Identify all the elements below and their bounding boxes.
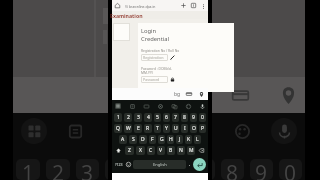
button[interactable]: ?123 <box>113 160 125 169</box>
staticText: F <box>151 136 154 143</box>
staticText: bg <box>174 91 181 98</box>
staticText: 1 <box>117 114 120 121</box>
staticText: A <box>121 136 125 143</box>
button[interactable]: P <box>199 124 206 133</box>
staticText: I <box>184 125 186 132</box>
button[interactable]: S <box>129 135 137 144</box>
button[interactable]: . <box>187 160 193 169</box>
button[interactable]: More options <box>199 2 207 10</box>
staticText: V <box>159 147 163 154</box>
button[interactable]: 7 <box>172 113 179 122</box>
staticText: 7 <box>197 159 210 180</box>
staticText: X <box>139 147 142 154</box>
button[interactable]: Apps <box>114 102 122 110</box>
button[interactable]: L <box>194 135 201 144</box>
button[interactable]: C <box>147 146 155 155</box>
button[interactable]: B <box>167 146 175 155</box>
button[interactable]: T <box>154 124 161 133</box>
staticText: M <box>189 147 194 154</box>
staticText: J <box>179 136 181 143</box>
button[interactable]: H <box>167 135 174 144</box>
staticText: 0 <box>284 159 297 180</box>
staticText: N <box>179 147 183 154</box>
staticText: Z <box>128 147 131 154</box>
staticText: T <box>156 125 159 132</box>
button[interactable]: F <box>149 135 156 144</box>
staticText: U <box>174 125 178 132</box>
staticText: Login <box>141 27 157 35</box>
staticText: MM-YY) <box>141 70 153 74</box>
button[interactable]: A <box>119 135 127 144</box>
button[interactable]: bseonline.dpa.in <box>122 2 179 10</box>
button[interactable]: Location <box>197 90 205 98</box>
button[interactable]: 1 <box>114 113 122 122</box>
button[interactable]: 2 <box>124 113 132 122</box>
staticText: 8 <box>226 159 239 180</box>
button[interactable]: Enter <box>193 158 206 171</box>
button[interactable]: R <box>144 124 152 133</box>
staticText: R <box>146 125 150 132</box>
button[interactable]: Registration <box>141 54 168 61</box>
button[interactable]: Payments <box>185 90 193 98</box>
staticText: C <box>149 147 153 154</box>
staticText: Registration <box>143 55 164 60</box>
button[interactable]: 3 <box>134 113 142 122</box>
staticText: P <box>201 125 205 132</box>
button[interactable]: Password <box>141 76 168 83</box>
button[interactable]: Z <box>125 146 134 155</box>
staticText: Password <box>143 77 160 82</box>
button[interactable]: Settings <box>156 102 164 110</box>
button[interactable]: G <box>158 135 165 144</box>
button[interactable]: GIF <box>142 102 150 110</box>
button[interactable]: Voice input <box>198 102 206 110</box>
button[interactable]: Clipboard <box>128 102 136 110</box>
staticText: 0 <box>201 114 204 121</box>
staticText: 5 <box>156 114 159 121</box>
button[interactable]: Home <box>113 1 122 10</box>
staticText: 7 <box>174 114 177 121</box>
button[interactable]: M <box>187 146 195 155</box>
staticText: 9 <box>192 114 195 121</box>
button[interactable]: Themes <box>184 102 192 110</box>
button[interactable]: 0 <box>199 113 206 122</box>
staticText: English <box>153 162 167 167</box>
button[interactable]: X <box>136 146 145 155</box>
button[interactable]: 8 <box>181 113 188 122</box>
button[interactable]: V <box>157 146 165 155</box>
staticText: 3 <box>81 159 94 180</box>
button[interactable]: Q <box>114 124 122 133</box>
button[interactable]: Tabs <box>189 1 198 10</box>
staticText: 4 <box>147 114 150 121</box>
button[interactable]: Backspace <box>196 146 207 155</box>
button[interactable]: 6 <box>163 113 170 122</box>
button[interactable]: 9 <box>190 113 197 122</box>
staticText: 5 <box>139 159 152 180</box>
button[interactable]: I <box>181 124 188 133</box>
button[interactable]: N <box>177 146 185 155</box>
button[interactable]: Emoji <box>125 160 132 169</box>
button[interactable]: New tab <box>179 1 188 10</box>
staticText: L <box>196 136 199 143</box>
button[interactable]: Shift <box>113 146 124 155</box>
staticText: O <box>192 125 196 132</box>
button[interactable]: W <box>124 124 132 133</box>
staticText: 2 <box>127 114 130 121</box>
button[interactable]: Y <box>163 124 170 133</box>
button[interactable]: U <box>172 124 179 133</box>
button[interactable]: J <box>176 135 183 144</box>
button[interactable]: English <box>133 160 186 169</box>
button[interactable]: K <box>185 135 192 144</box>
button[interactable]: 5 <box>154 113 161 122</box>
staticText: 6 <box>165 114 168 121</box>
staticText: 9 <box>255 159 268 180</box>
button[interactable]: Translate <box>173 90 181 98</box>
staticText: . <box>189 161 191 168</box>
staticText: bseonline.dpa.in <box>129 4 156 9</box>
button[interactable]: 4 <box>144 113 152 122</box>
button[interactable]: Translate <box>170 102 178 110</box>
button[interactable]: D <box>139 135 147 144</box>
staticText: H <box>169 136 173 143</box>
button[interactable]: O <box>190 124 197 133</box>
button[interactable]: E <box>134 124 142 133</box>
staticText: Credential <box>141 35 169 43</box>
